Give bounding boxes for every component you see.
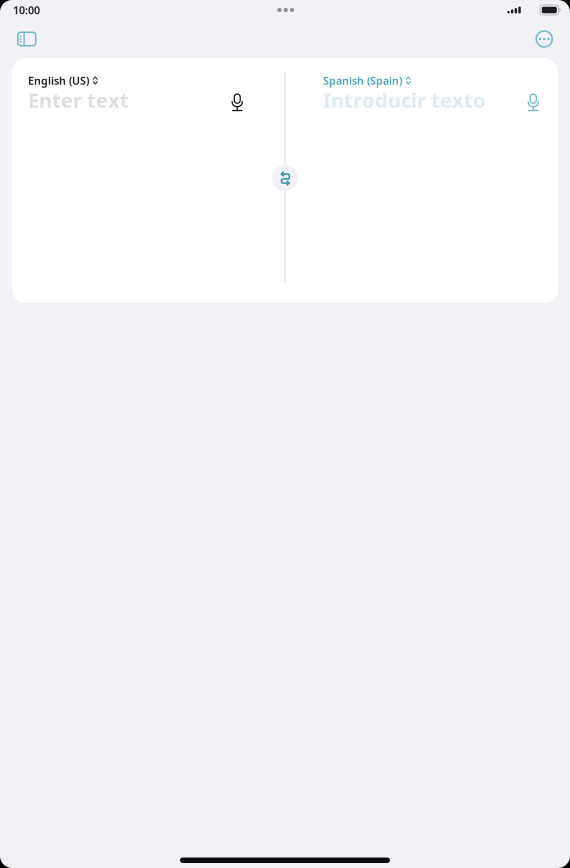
button[interactable]: English (US) [28, 74, 98, 87]
button[interactable]: More [519, 27, 553, 51]
button[interactable]: Swap languages [272, 165, 298, 191]
button[interactable]: Dictate [524, 89, 542, 112]
staticText: English (US) [28, 73, 89, 88]
button[interactable]: Spanish (Spain) [323, 74, 411, 87]
staticText: Introducir texto [323, 87, 486, 113]
staticText: 10:00 [13, 3, 40, 17]
button[interactable]: Show Sidebar [17, 27, 51, 51]
button[interactable]: Dictate [228, 89, 246, 112]
staticText: Spanish (Spain) [323, 73, 402, 88]
staticText: Enter text [28, 87, 129, 113]
